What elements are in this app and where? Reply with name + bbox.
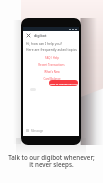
staticText: How to change my PIN? <box>50 82 78 85</box>
button[interactable]: What's New <box>26 68 77 75</box>
staticText: Card Balance <box>43 77 61 81</box>
staticText: What's New <box>44 70 60 74</box>
staticText: Recent Transactions <box>38 63 65 67</box>
staticText: digibot <box>34 33 47 38</box>
staticText: Here are frequently asked topics <box>26 47 77 52</box>
button[interactable]: FAQ / Help <box>26 54 77 61</box>
button[interactable]: Close <box>26 33 31 38</box>
button[interactable]: Card Balance <box>26 75 77 82</box>
button[interactable]: Recent Transactions <box>26 61 77 68</box>
staticText: FAQ / Help <box>45 56 59 60</box>
staticText: Hi, how can I help you? <box>26 41 63 46</box>
staticText: Message <box>31 129 44 133</box>
button[interactable]: How to change my PIN? <box>49 80 78 86</box>
staticText: Talk to our digibot whenever; it never s… <box>8 153 95 169</box>
